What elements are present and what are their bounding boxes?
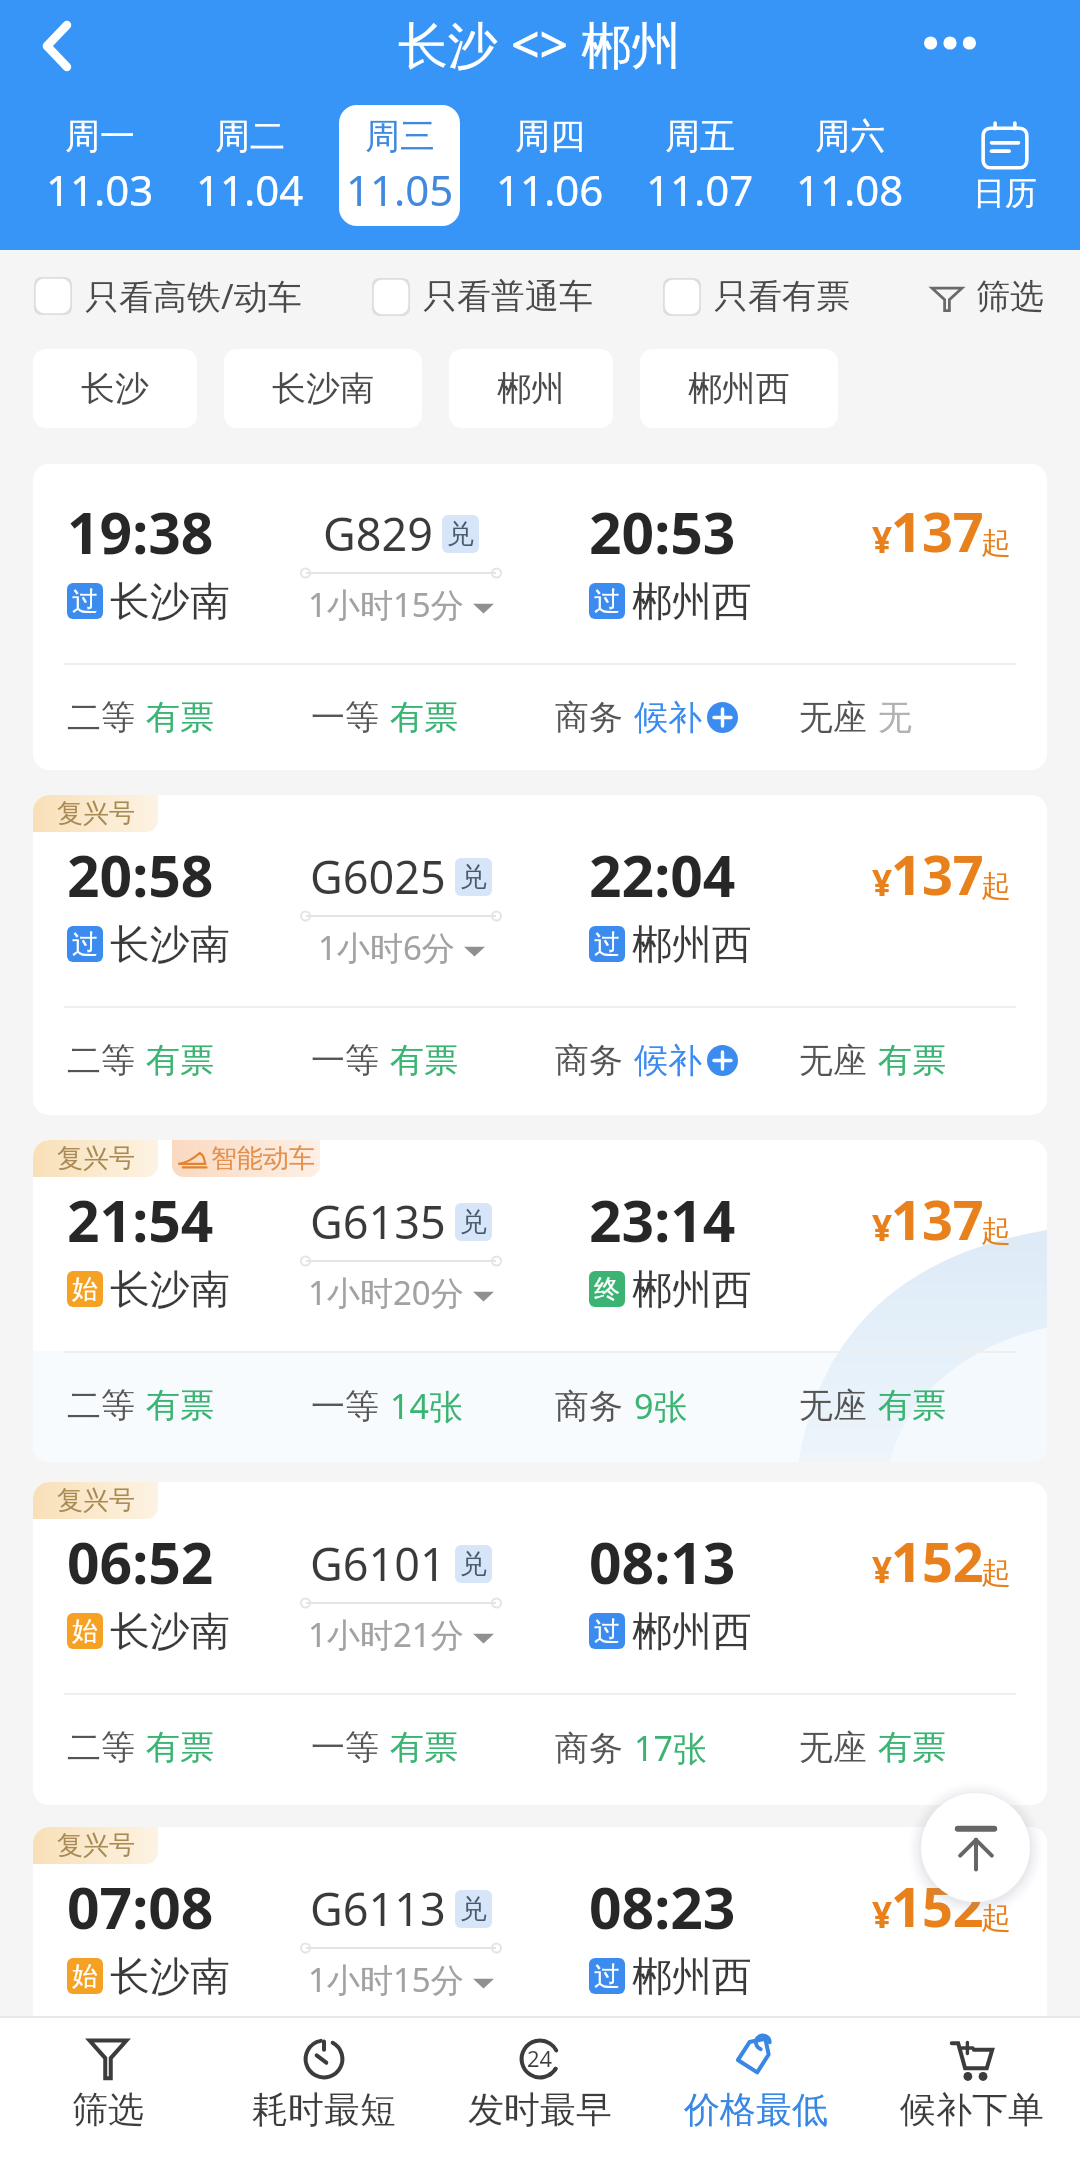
staticText: 日历 bbox=[973, 173, 1037, 213]
button[interactable]: Scroll to top bbox=[921, 1793, 1030, 1902]
staticText: 耗时最短 bbox=[252, 2087, 396, 2132]
staticText: 21:54 bbox=[67, 1181, 214, 1259]
staticText: 长沙南 bbox=[110, 1951, 230, 2001]
staticText: 17张 bbox=[634, 1725, 707, 1771]
staticText: 19:38 bbox=[67, 493, 214, 571]
staticText: 1小时6分 bbox=[318, 925, 455, 970]
staticText: 商务 bbox=[555, 1039, 623, 1082]
button[interactable]: 筛选 bbox=[930, 275, 1044, 318]
button[interactable]: 只看高铁/动车 bbox=[34, 273, 302, 319]
staticText: 长沙南 bbox=[272, 367, 374, 410]
button[interactable]: More options bbox=[910, 3, 990, 83]
button[interactable]: 周四 bbox=[475, 105, 625, 226]
staticText: 郴州西 bbox=[632, 1606, 752, 1656]
staticText: 郴州西 bbox=[632, 576, 752, 626]
staticText: 08:13 bbox=[589, 1523, 736, 1601]
button[interactable]: 19:38 bbox=[33, 464, 1047, 770]
button[interactable]: 24 bbox=[432, 2018, 648, 2181]
staticText: 筛选 bbox=[976, 275, 1044, 318]
staticText: 07:08 bbox=[67, 1868, 214, 1946]
button[interactable]: Back bbox=[22, 11, 92, 81]
staticText: 只看高铁/动车 bbox=[85, 273, 302, 319]
staticText: 24 bbox=[527, 2043, 553, 2073]
staticText: 周二 bbox=[215, 114, 285, 158]
staticText: G6101 bbox=[310, 1533, 446, 1594]
button[interactable]: 周一 bbox=[25, 105, 175, 226]
button[interactable]: 只看有票 bbox=[663, 275, 850, 318]
button[interactable]: 复兴号 bbox=[33, 1482, 1047, 1805]
staticText: 一等 bbox=[311, 1385, 379, 1428]
button[interactable]: 耗时最短 bbox=[216, 2018, 432, 2181]
staticText: 有票 bbox=[878, 1726, 946, 1769]
button[interactable]: 长沙 bbox=[33, 349, 197, 428]
staticText: 1小时20分 bbox=[308, 1270, 464, 1315]
staticText: 有票 bbox=[390, 696, 458, 739]
staticText: 候补 bbox=[634, 696, 702, 739]
button[interactable]: 候补下单 bbox=[864, 2018, 1080, 2181]
staticText: 长沙南 bbox=[110, 919, 230, 969]
button[interactable]: 周六 bbox=[775, 105, 925, 226]
staticText: 智能动车 bbox=[211, 1142, 315, 1175]
staticText: 长沙南 bbox=[110, 576, 230, 626]
staticText: 20:58 bbox=[67, 836, 214, 914]
staticText: 11.04 bbox=[196, 161, 304, 218]
staticText: 06:52 bbox=[67, 1523, 214, 1601]
staticText: 有票 bbox=[146, 696, 214, 739]
staticText: 始 bbox=[72, 1960, 98, 1993]
staticText: G6135 bbox=[310, 1191, 446, 1252]
staticText: 11.03 bbox=[46, 161, 154, 218]
staticText: 过 bbox=[594, 1960, 620, 1993]
button[interactable]: 复兴号 bbox=[33, 1827, 1047, 2019]
staticText: 起 bbox=[981, 524, 1011, 562]
staticText: 郴州 bbox=[497, 367, 565, 410]
staticText: G6113 bbox=[310, 1878, 446, 1939]
staticText: 发时最早 bbox=[468, 2087, 612, 2132]
staticText: ¥ bbox=[872, 859, 893, 907]
button[interactable]: 复兴号 bbox=[33, 1140, 1047, 1462]
button[interactable]: 郴州 bbox=[449, 349, 613, 428]
staticText: 终 bbox=[594, 1273, 620, 1306]
button[interactable]: 价格最低 bbox=[648, 2018, 864, 2181]
staticText: 只看有票 bbox=[714, 275, 850, 318]
staticText: G829 bbox=[323, 503, 433, 564]
staticText: 始 bbox=[72, 1615, 98, 1648]
staticText: 长沙南 bbox=[110, 1606, 230, 1656]
button[interactable]: 郴州西 bbox=[640, 349, 838, 428]
staticText: 周三 bbox=[365, 114, 435, 158]
staticText: 复兴号 bbox=[57, 1484, 135, 1517]
staticText: 兑 bbox=[460, 1547, 487, 1581]
button[interactable]: 周五 bbox=[625, 105, 775, 226]
staticText: ¥ bbox=[872, 516, 893, 564]
staticText: 商务 bbox=[555, 1727, 623, 1770]
staticText: 起 bbox=[981, 867, 1011, 905]
button[interactable]: 筛选 bbox=[0, 2018, 216, 2181]
staticText: 过 bbox=[72, 585, 98, 618]
staticText: ¥ bbox=[872, 1204, 893, 1252]
staticText: 一等 bbox=[311, 696, 379, 739]
staticText: 有票 bbox=[146, 1726, 214, 1769]
staticText: 二等 bbox=[67, 1384, 135, 1427]
staticText: 14张 bbox=[390, 1383, 463, 1429]
staticText: 有票 bbox=[146, 1039, 214, 1082]
staticText: 兑 bbox=[447, 517, 474, 551]
staticText: 1小时15分 bbox=[308, 582, 464, 627]
button[interactable]: 复兴号 bbox=[33, 795, 1047, 1115]
staticText: 无座 bbox=[799, 1726, 867, 1769]
staticText: 兑 bbox=[460, 860, 487, 894]
staticText: 有票 bbox=[878, 1384, 946, 1427]
button[interactable]: Calendar bbox=[940, 106, 1070, 227]
staticText: 周六 bbox=[815, 114, 885, 158]
staticText: 二等 bbox=[67, 1039, 135, 1082]
staticText: 152 bbox=[891, 1869, 984, 1943]
staticText: 候补下单 bbox=[900, 2087, 1044, 2132]
button[interactable]: 周三 bbox=[325, 105, 475, 226]
button[interactable]: 周二 bbox=[175, 105, 325, 226]
button[interactable]: 长沙南 bbox=[224, 349, 422, 428]
staticText: 无座 bbox=[799, 1039, 867, 1082]
button[interactable]: 只看普通车 bbox=[372, 275, 593, 318]
staticText: 起 bbox=[981, 1899, 1011, 1937]
staticText: 137 bbox=[891, 1182, 984, 1256]
staticText: 1小时21分 bbox=[308, 1612, 464, 1657]
staticText: 周五 bbox=[665, 114, 735, 158]
staticText: 复兴号 bbox=[57, 797, 135, 830]
